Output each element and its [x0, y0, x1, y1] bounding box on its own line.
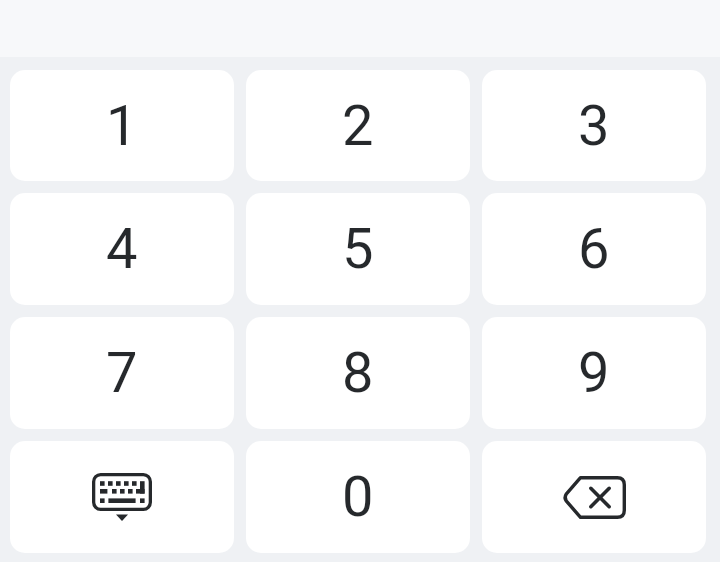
button[interactable]: 8	[246, 317, 470, 429]
button[interactable]	[482, 441, 706, 553]
staticText: 7	[106, 340, 138, 406]
staticText: 9	[578, 340, 610, 406]
staticText: 2	[342, 93, 374, 159]
staticText: 1	[106, 93, 138, 159]
button[interactable]: 2	[246, 70, 470, 181]
staticText: 3	[578, 93, 610, 159]
button[interactable]	[10, 441, 234, 553]
button[interactable]: 0	[246, 441, 470, 553]
button[interactable]: 6	[482, 193, 706, 305]
button[interactable]: 1	[10, 70, 234, 181]
staticText: 4	[106, 216, 138, 282]
button[interactable]: 3	[482, 70, 706, 181]
button[interactable]: 4	[10, 193, 234, 305]
staticText: 8	[342, 340, 374, 406]
staticText: 0	[342, 464, 374, 530]
button[interactable]: 5	[246, 193, 470, 305]
staticText: 5	[342, 216, 374, 282]
button[interactable]: 9	[482, 317, 706, 429]
button[interactable]: 7	[10, 317, 234, 429]
staticText: 6	[578, 216, 610, 282]
